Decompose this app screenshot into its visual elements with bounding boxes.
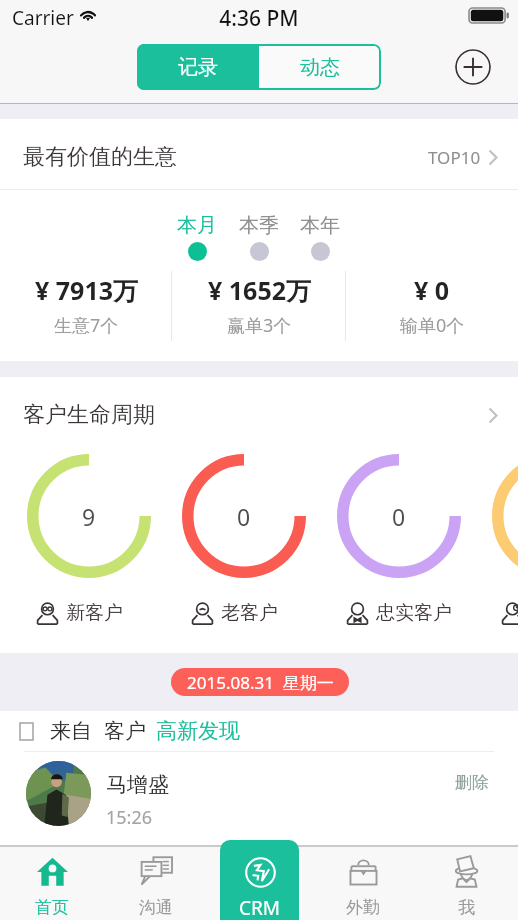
button[interactable]: 沟通 bbox=[104, 839, 208, 920]
staticText: 老客户 bbox=[221, 601, 278, 625]
staticText: 本季 bbox=[239, 213, 279, 238]
staticText: 外勤 bbox=[346, 897, 380, 918]
staticText: 高新发现 bbox=[156, 718, 240, 744]
button[interactable]: 删除 bbox=[455, 772, 489, 793]
staticText: 最有价值的生意 bbox=[23, 143, 177, 171]
button[interactable]: 新客户 bbox=[36, 599, 123, 627]
button[interactable]: 客户生命周期 bbox=[0, 377, 518, 451]
button[interactable]: 本年 bbox=[289, 213, 351, 268]
button[interactable]: 本月 bbox=[166, 213, 228, 268]
button[interactable]: 0 bbox=[337, 454, 461, 578]
staticText: CRM bbox=[239, 895, 281, 920]
staticText: ¥ 7913万 bbox=[35, 273, 139, 307]
button[interactable]: 2015.08.31 星期一 bbox=[171, 668, 349, 696]
button[interactable]: 外勤 bbox=[311, 839, 415, 920]
button[interactable]: 老客户 bbox=[191, 599, 278, 627]
staticText: 0 bbox=[237, 501, 251, 532]
staticText: Carrier bbox=[12, 5, 74, 31]
staticText: 马增盛 bbox=[106, 772, 169, 798]
staticText: 来自 bbox=[50, 718, 92, 744]
button[interactable]: ¥ 0 bbox=[346, 269, 518, 349]
button[interactable]: 马增盛 bbox=[0, 752, 518, 842]
staticText: 输单0个 bbox=[400, 313, 465, 338]
staticText: ¥ 0 bbox=[414, 273, 450, 307]
staticText: TOP10 bbox=[428, 146, 481, 169]
staticText: 客户生命周期 bbox=[23, 401, 155, 429]
staticText: 首页 bbox=[35, 897, 69, 918]
staticText: 记录 bbox=[178, 55, 218, 80]
staticText: 忠实客户 bbox=[376, 601, 452, 625]
button[interactable]: Add bbox=[455, 49, 491, 85]
staticText: 4:36 PM bbox=[0, 4, 518, 33]
staticText: 删除 bbox=[455, 772, 489, 793]
staticText: 动态 bbox=[300, 55, 340, 80]
staticText: 0 bbox=[392, 501, 406, 532]
button[interactable]: 动态 bbox=[259, 44, 381, 90]
staticText: 9 bbox=[82, 501, 96, 532]
button[interactable]: ¥ 1652万 bbox=[173, 269, 346, 349]
button[interactable]: CRM bbox=[220, 840, 299, 920]
button[interactable]: 首页 bbox=[0, 839, 104, 920]
button[interactable]: 忠实客户 bbox=[346, 599, 452, 627]
button[interactable]: 0 bbox=[492, 454, 518, 578]
staticText: 我 bbox=[458, 897, 475, 918]
button[interactable]: 0 bbox=[182, 454, 306, 578]
staticText: 2015.08.31 星期一 bbox=[187, 671, 334, 694]
staticText: ¥ 1652万 bbox=[208, 273, 312, 307]
staticText: 本年 bbox=[300, 213, 340, 238]
staticText: 本月 bbox=[177, 213, 217, 238]
staticText: 15:26 bbox=[106, 805, 153, 830]
button[interactable]: 本季 bbox=[228, 213, 290, 268]
staticText: 生意7个 bbox=[54, 313, 119, 338]
button[interactable]: ¥ 7913万 bbox=[0, 269, 173, 349]
button[interactable]: 我 bbox=[414, 839, 518, 920]
button[interactable]: 记录 bbox=[137, 44, 259, 90]
button[interactable]: 最有价值的生意 bbox=[0, 119, 518, 189]
staticText: 客户 bbox=[104, 718, 146, 744]
button[interactable]: 9 bbox=[27, 454, 151, 578]
button[interactable]: 沉睡客户 bbox=[501, 599, 518, 627]
staticText: 赢单3个 bbox=[227, 313, 292, 338]
staticText: 沟通 bbox=[139, 897, 173, 918]
staticText: 新客户 bbox=[66, 601, 123, 625]
